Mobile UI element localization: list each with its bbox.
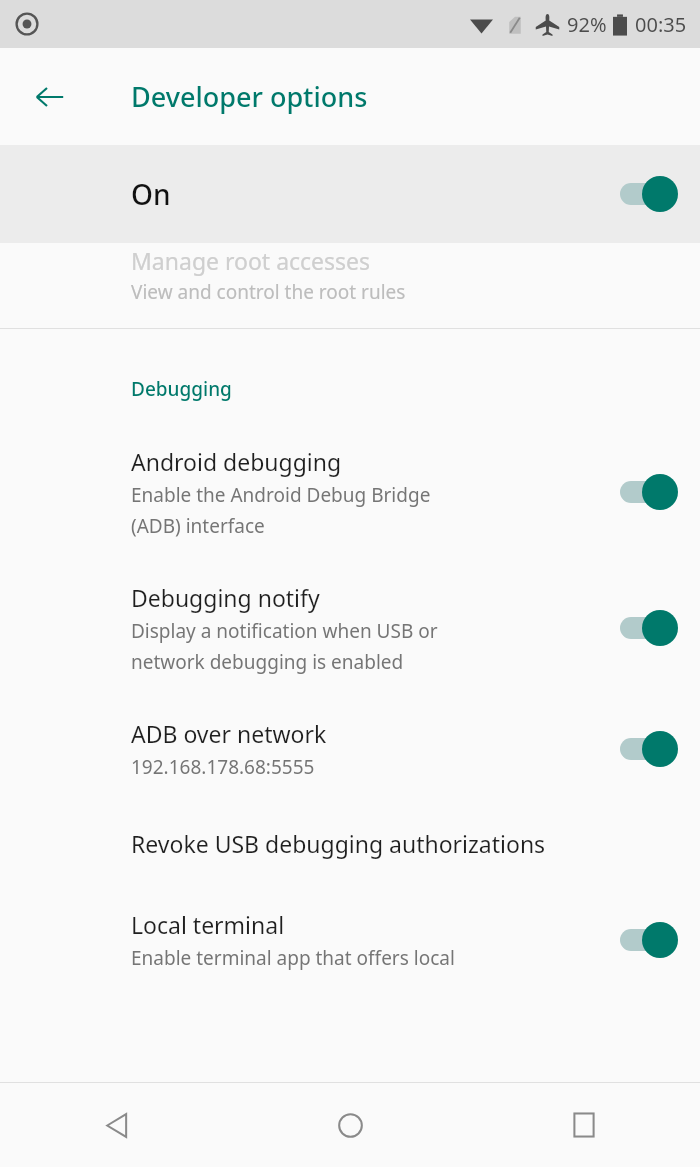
staticText: Manage root accesses <box>131 245 371 276</box>
staticText: Display a notification when USB or netwo… <box>131 618 438 674</box>
staticText: 92% <box>567 11 607 38</box>
button[interactable]: On <box>0 145 700 243</box>
staticText: Debugging notify <box>131 582 320 613</box>
button[interactable]: ADB over network <box>0 718 700 780</box>
staticText: Revoke USB debugging authorizations <box>131 828 546 859</box>
staticText: Enable the Android Debug Bridge (ADB) in… <box>131 482 431 538</box>
button[interactable]: Revoke USB debugging authorizations <box>0 828 700 859</box>
staticText: 00:35 <box>635 11 687 38</box>
button[interactable]: Debugging notify <box>0 582 700 674</box>
button[interactable]: Back <box>20 67 80 127</box>
button[interactable]: Back <box>0 1083 234 1167</box>
staticText: Developer options <box>131 78 368 115</box>
button[interactable]: Android debugging <box>0 446 700 538</box>
staticText: Debugging <box>131 376 232 402</box>
staticText: ADB over network <box>131 718 327 749</box>
staticText: Local terminal <box>131 909 285 940</box>
button[interactable]: Local terminal <box>0 909 700 971</box>
staticText: On <box>131 175 171 213</box>
staticText: Enable terminal app that offers local <box>131 945 455 971</box>
button[interactable]: Home <box>234 1083 467 1167</box>
staticText: 192.168.178.68:5555 <box>131 754 315 780</box>
staticText: View and control the root rules <box>131 279 406 305</box>
button[interactable]: Manage root accesses <box>0 243 700 328</box>
staticText: Android debugging <box>131 446 342 477</box>
button[interactable]: Recents <box>467 1083 700 1167</box>
